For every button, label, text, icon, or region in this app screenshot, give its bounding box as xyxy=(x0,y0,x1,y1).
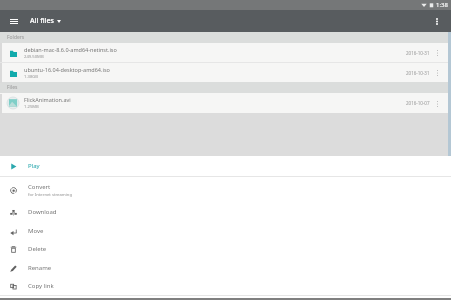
button[interactable]: All files xyxy=(27,13,64,29)
staticText: Download xyxy=(28,208,57,216)
button[interactable]: Delete xyxy=(0,240,451,258)
button[interactable]: More options xyxy=(426,10,448,32)
staticText: 2016-10-07 xyxy=(406,100,430,106)
staticText: Play xyxy=(28,162,40,170)
staticText: 1:38 xyxy=(436,1,448,9)
button[interactable]: Item options xyxy=(430,63,444,82)
button[interactable]: Convert xyxy=(0,177,451,203)
button[interactable]: Copy link xyxy=(0,277,451,295)
staticText: 2016-10-31 xyxy=(406,50,430,56)
staticText: Move xyxy=(28,227,44,235)
button[interactable]: Download xyxy=(0,203,451,221)
button[interactable]: Rename xyxy=(0,259,451,277)
staticText: 249.50MB xyxy=(24,54,44,60)
button[interactable]: FlickAnimation.avi xyxy=(0,93,451,113)
staticText: 1.38GB xyxy=(24,74,39,80)
staticText: FlickAnimation.avi xyxy=(24,96,71,103)
button[interactable]: Navigation menu xyxy=(0,10,27,32)
staticText: Copy link xyxy=(28,282,54,290)
button[interactable]: Play xyxy=(0,156,451,176)
button[interactable]: ubuntu-16.04-desktop-amd64.iso xyxy=(0,63,451,82)
button[interactable]: Item options xyxy=(430,43,444,62)
staticText: ubuntu-16.04-desktop-amd64.iso xyxy=(24,66,110,73)
staticText: Rename xyxy=(28,264,52,272)
button[interactable]: Move xyxy=(0,222,451,240)
staticText: 1.25MB xyxy=(24,104,39,110)
staticText: Delete xyxy=(28,245,47,253)
button[interactable]: Item options xyxy=(430,94,444,113)
staticText: 2016-10-31 xyxy=(406,70,430,76)
button[interactable]: debian-mac-8.6.0-amd64-netinst.iso xyxy=(0,43,451,62)
staticText: All files xyxy=(30,16,54,26)
staticText: Convert xyxy=(28,183,51,191)
staticText: Folders xyxy=(7,34,25,41)
staticText: Files xyxy=(7,84,18,91)
staticText: for Internet streaming xyxy=(28,192,72,198)
staticText: debian-mac-8.6.0-amd64-netinst.iso xyxy=(24,46,117,53)
